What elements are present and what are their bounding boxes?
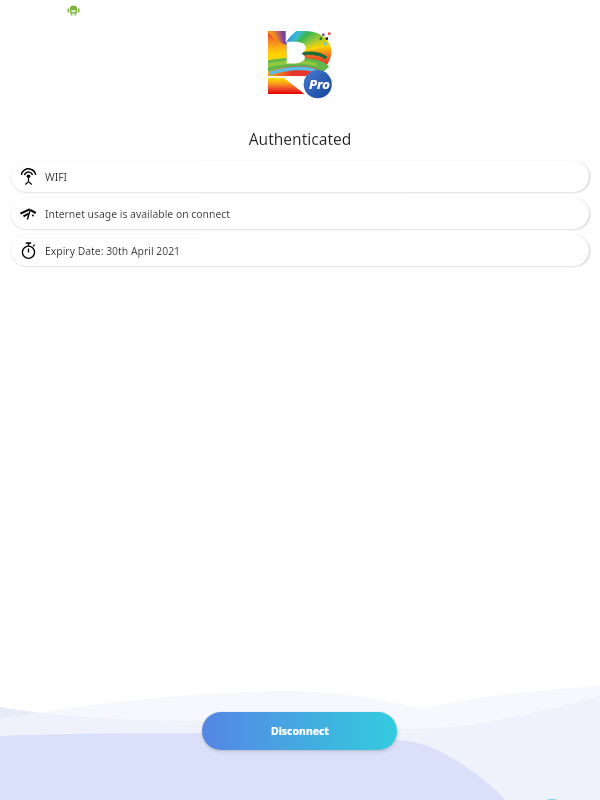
staticText: Authenticated: [0, 128, 600, 149]
button[interactable]: Internet usage is available on connect: [11, 198, 589, 229]
button[interactable]: Help: [537, 799, 567, 800]
button[interactable]: Disconnect: [202, 712, 397, 750]
staticText: Internet usage is available on connect: [45, 207, 231, 221]
staticText: Disconnect: [271, 724, 329, 738]
other: Notification: [67, 3, 80, 16]
staticText: Expiry Date: 30th April 2021: [45, 244, 181, 258]
staticText: WIFI: [45, 170, 68, 184]
button[interactable]: WIFI: [11, 161, 589, 192]
button[interactable]: Expiry Date: 30th April 2021: [11, 235, 589, 266]
staticText: Pro: [309, 75, 330, 93]
